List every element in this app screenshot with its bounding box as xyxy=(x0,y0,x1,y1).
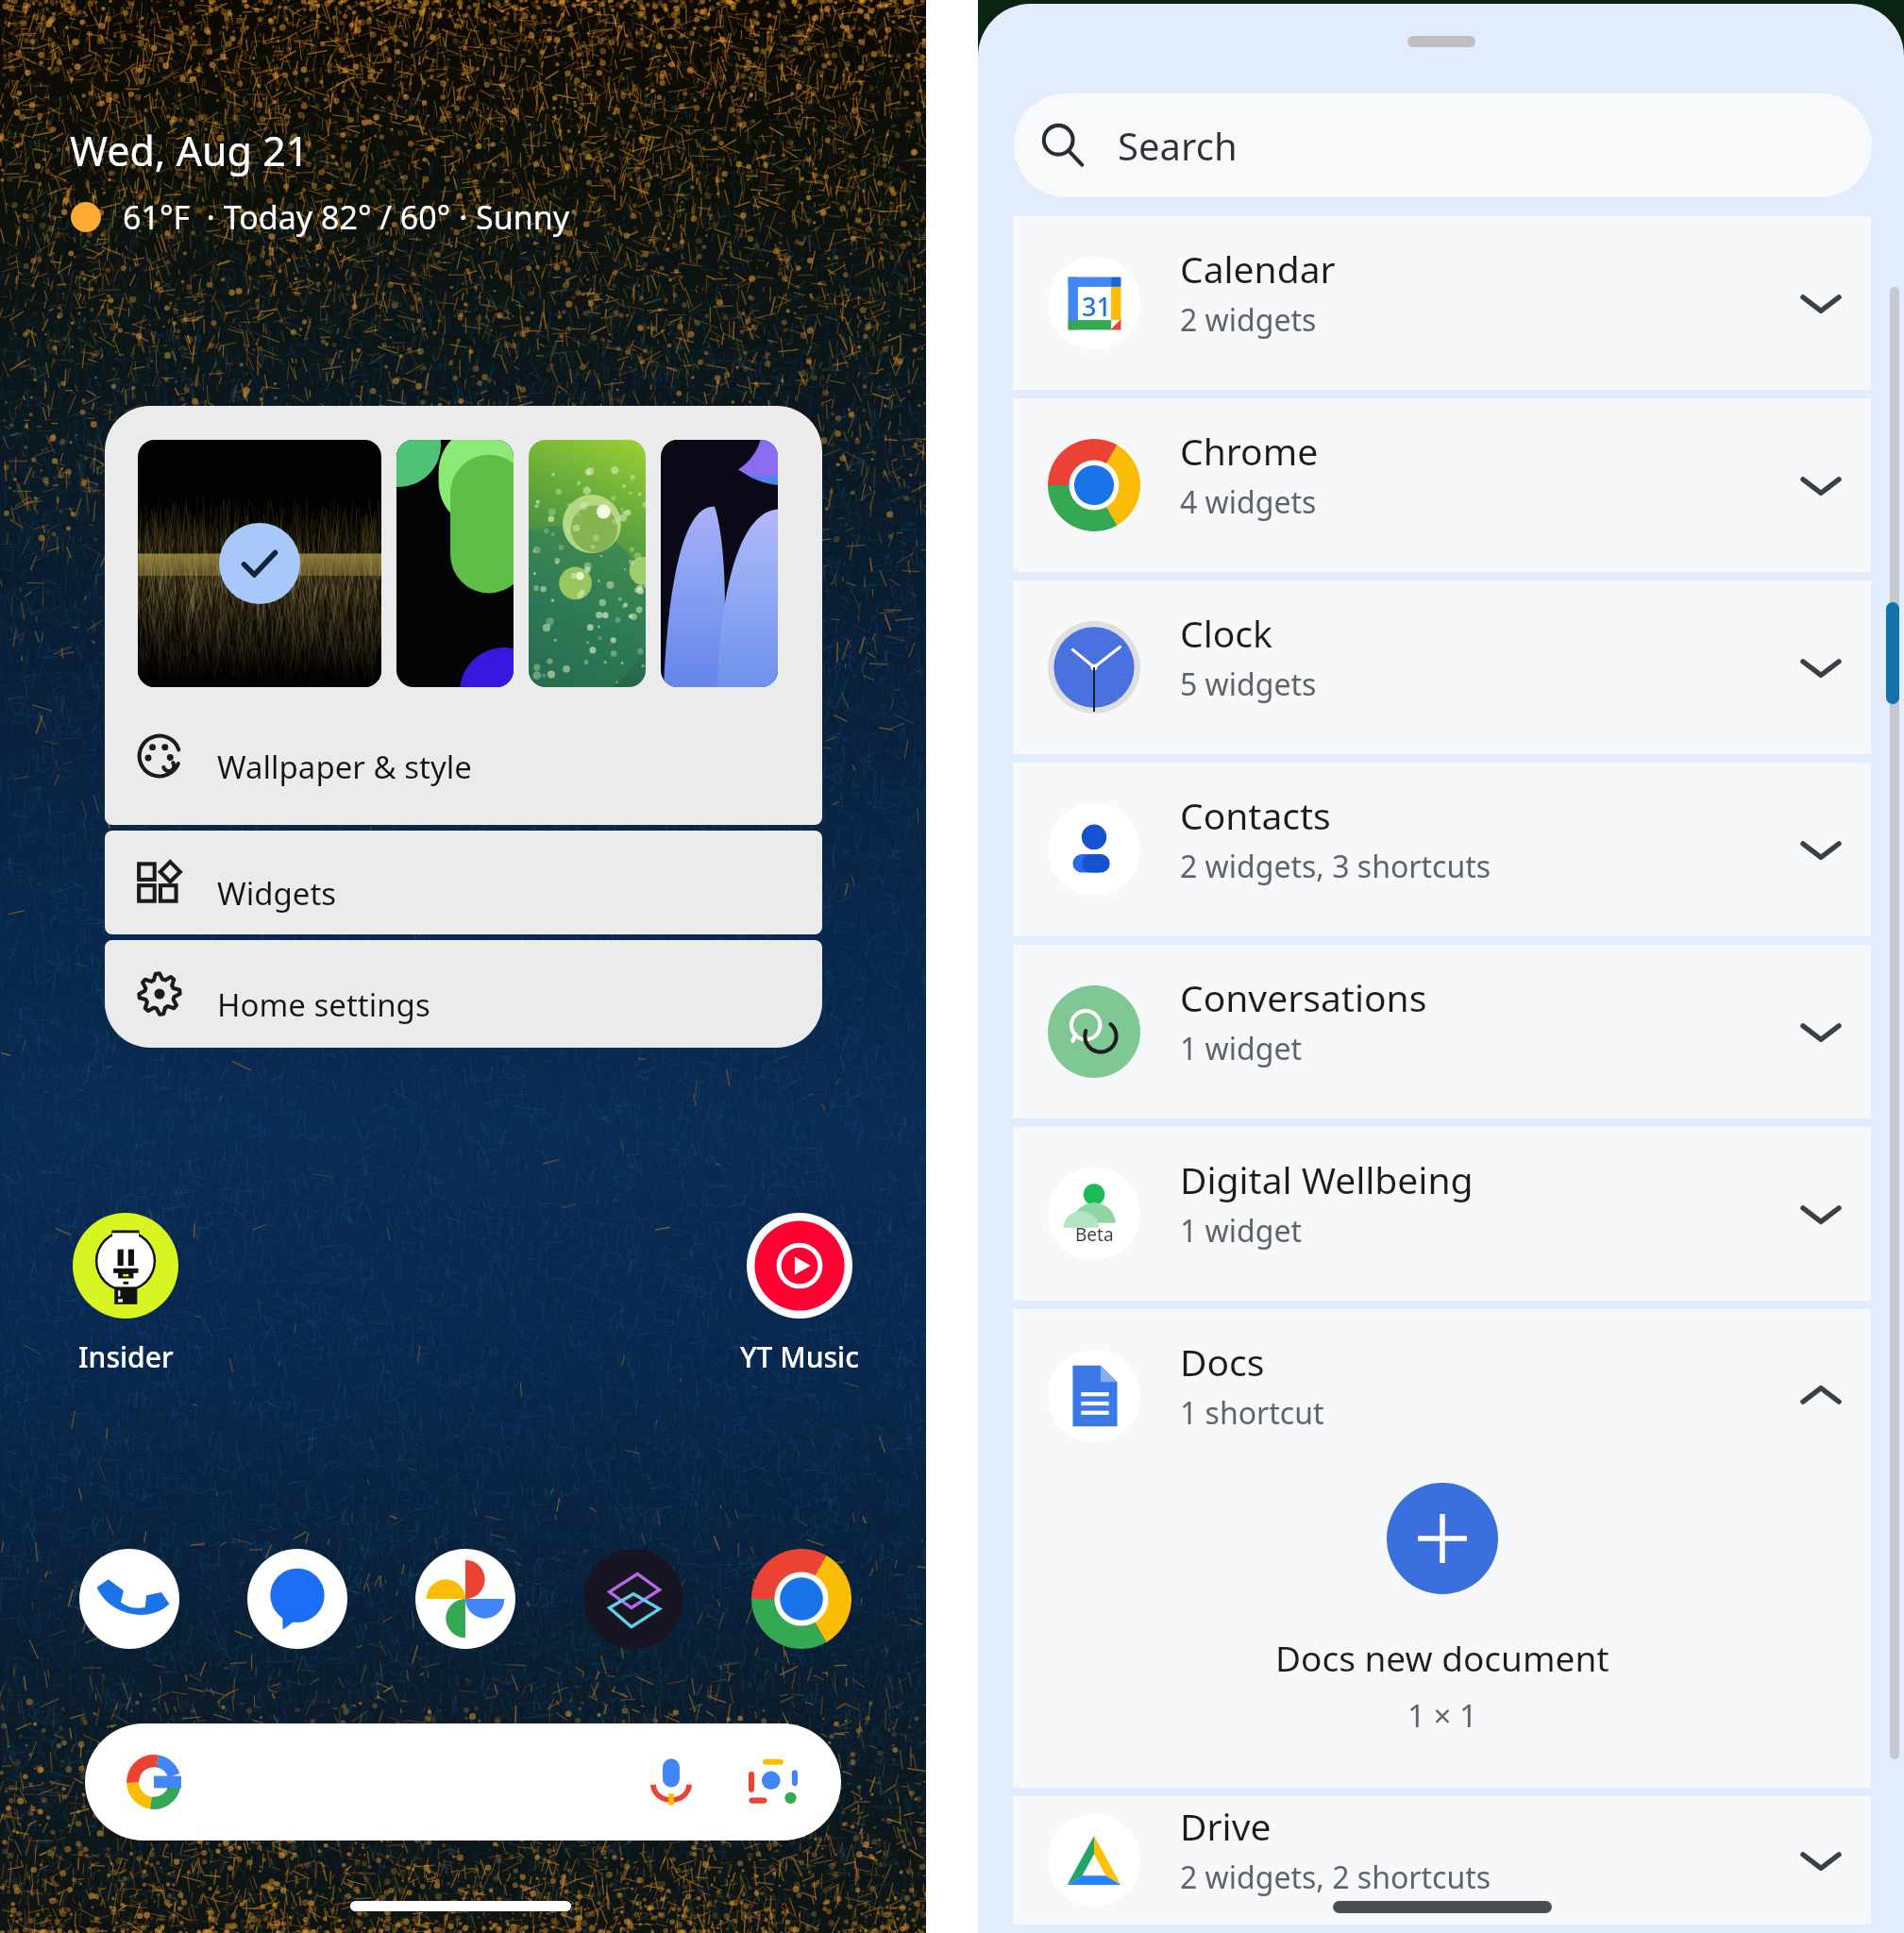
staticText: Docs new document xyxy=(1275,1634,1609,1681)
staticText: Wallpaper & style xyxy=(217,746,472,788)
staticText: YT Music xyxy=(740,1337,859,1376)
staticText: 2 widgets, 2 shortcuts xyxy=(1180,1857,1491,1898)
button[interactable]: Contacts xyxy=(1013,763,1871,936)
button[interactable]: Widgets xyxy=(105,831,822,934)
button[interactable]: Conversations xyxy=(1013,945,1871,1118)
staticText: Contacts xyxy=(1180,790,1331,840)
staticText: 1 shortcut xyxy=(1180,1392,1324,1434)
button[interactable]: Collapse xyxy=(1794,1370,1847,1422)
button[interactable]: Expand xyxy=(1794,1834,1847,1887)
button[interactable]: Files xyxy=(583,1549,683,1649)
staticText: 2 widgets, 3 shortcuts xyxy=(1180,846,1491,887)
button[interactable]: Expand xyxy=(1794,1187,1847,1240)
button[interactable]: Abstract green wallpaper xyxy=(396,440,514,687)
button[interactable]: Dew leaf wallpaper xyxy=(529,440,646,687)
button[interactable]: Phone xyxy=(79,1549,179,1649)
button[interactable]: Photos xyxy=(415,1549,515,1649)
button[interactable]: Drag handle xyxy=(1407,36,1475,47)
staticText: Clock xyxy=(1180,608,1272,658)
button[interactable]: Expand xyxy=(1794,1005,1847,1058)
button[interactable]: Violet petals wallpaper xyxy=(661,440,778,687)
staticText: Wed, Aug 21 xyxy=(70,123,310,178)
button[interactable]: Chrome xyxy=(751,1549,851,1649)
button[interactable]: Docs xyxy=(1013,1309,1871,1788)
staticText: 2 widgets xyxy=(1180,299,1317,341)
other: Google xyxy=(126,1755,181,1809)
button[interactable]: Search xyxy=(1014,93,1872,197)
staticText: Calendar xyxy=(1180,244,1336,294)
staticText: 31 xyxy=(1082,289,1111,324)
button[interactable]: Drive xyxy=(1013,1796,1871,1925)
staticText: Search xyxy=(1118,120,1238,171)
staticText: Widgets xyxy=(217,872,337,915)
staticText: Docs xyxy=(1180,1336,1265,1387)
staticText: Chrome xyxy=(1180,426,1319,476)
button[interactable]: Voice search xyxy=(645,1756,698,1808)
staticText: 1 × 1 xyxy=(1407,1694,1477,1737)
button[interactable]: Insider xyxy=(22,1213,229,1376)
button[interactable]: Google Lens xyxy=(747,1756,800,1808)
staticText: 61°F · Today 82° / 60° · Sunny xyxy=(123,195,570,239)
button[interactable]: Expand xyxy=(1794,459,1847,512)
button[interactable]: Chrome xyxy=(1013,398,1871,572)
button[interactable]: Clock xyxy=(1013,580,1871,754)
staticText: 1 widget xyxy=(1180,1210,1302,1252)
button[interactable]: YT Music xyxy=(696,1213,903,1376)
button[interactable]: Expand xyxy=(1794,641,1847,694)
staticText: Insider xyxy=(78,1337,174,1376)
button[interactable]: Messages xyxy=(247,1549,347,1649)
button[interactable]: Wallpaper & style xyxy=(105,687,822,825)
button[interactable]: 31 xyxy=(1013,216,1871,390)
button[interactable]: Google xyxy=(85,1723,841,1841)
button[interactable]: Beta xyxy=(1013,1127,1871,1301)
button[interactable]: Home settings xyxy=(105,940,822,1048)
staticText: Conversations xyxy=(1180,972,1427,1022)
staticText: 5 widgets xyxy=(1180,664,1317,705)
button[interactable]: Grass wallpaper, selected xyxy=(138,440,381,687)
button[interactable]: Expand xyxy=(1794,277,1847,329)
button[interactable]: Add Docs new document xyxy=(1387,1483,1498,1594)
staticText: 1 widget xyxy=(1180,1028,1302,1069)
staticText: Drive xyxy=(1180,1801,1272,1851)
staticText: Beta xyxy=(1075,1222,1114,1247)
staticText: Digital Wellbeing xyxy=(1180,1154,1474,1204)
button[interactable]: Expand xyxy=(1794,823,1847,876)
staticText: 4 widgets xyxy=(1180,481,1317,523)
staticText: Home settings xyxy=(217,983,430,1026)
